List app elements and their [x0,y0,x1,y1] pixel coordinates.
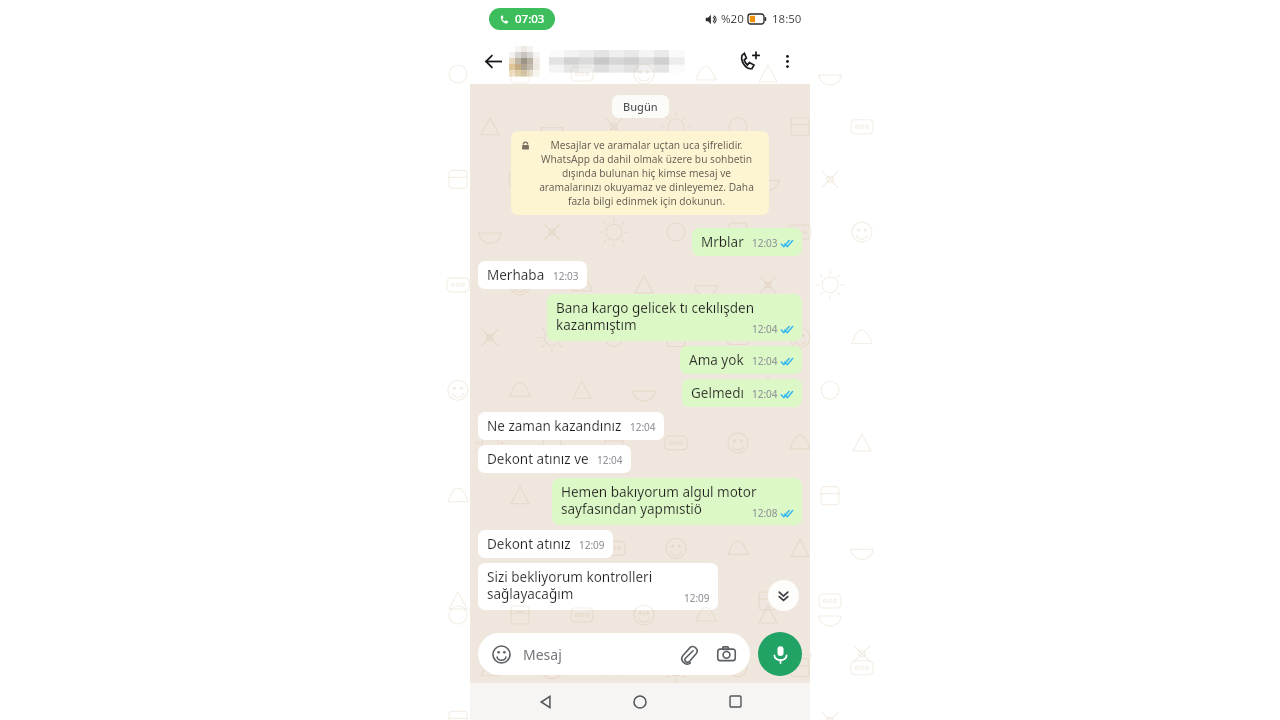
button[interactable]: Back [480,48,506,74]
button[interactable]: Emoji [490,643,512,665]
staticText: Hemen bakıyorum algul motor sayfasından … [561,483,794,518]
button[interactable]: Mesajlar ve aramalar uçtan uca şifrelidi… [511,131,769,215]
button[interactable]: Emoji [478,633,750,675]
button[interactable]: Bana kargo gelicek tı cekılışden kazanmı… [547,294,802,341]
staticText: Mesaj [523,645,562,664]
button[interactable]: Scroll to bottom [768,580,799,611]
staticText: %20 [721,11,744,27]
staticText: Dekont atınız ve [487,450,589,468]
button[interactable]: Recents [716,683,754,720]
staticText: 12:08 [752,506,778,520]
staticText: 12:04 [752,387,778,401]
button[interactable]: Bugün [612,95,669,118]
staticText: Dekont atınız [487,535,571,553]
staticText: Bugün [623,99,658,114]
button[interactable]: Ama yok [680,346,802,374]
button[interactable]: Mrblar [692,228,802,256]
staticText: Merhaba [487,266,545,284]
button[interactable]: Hemen bakıyorum algul motor sayfasından … [552,478,802,525]
button[interactable]: Back [527,683,565,720]
staticText: 12:03 [553,269,579,283]
staticText: 12:04 [597,453,623,467]
button[interactable]: More options [774,48,800,74]
staticText: Mrblar [701,233,744,251]
button[interactable] [509,46,684,76]
button[interactable]: Ne zaman kazandınız [478,412,664,440]
button[interactable]: Dekont atınız [478,530,613,558]
button[interactable]: 07:03 [489,8,555,30]
button[interactable]: Attach [676,642,700,666]
button[interactable]: Voice message [758,632,802,676]
staticText: Ne zaman kazandınız [487,417,622,435]
button[interactable]: Dekont atınız ve [478,445,631,473]
staticText: 07:03 [515,11,545,27]
button[interactable]: Camera [714,642,738,666]
staticText: Gelmedı [691,384,744,402]
staticText: Ama yok [689,351,744,369]
button[interactable]: Gelmedı [682,379,802,407]
button[interactable]: Home [621,683,659,720]
staticText: 12:09 [684,591,710,605]
button[interactable]: Add call [735,46,765,76]
staticText: 12:04 [752,322,778,336]
staticText: 12:09 [579,538,605,552]
staticText: 18:50 [772,11,802,27]
staticText: 12:04 [752,354,778,368]
staticText: 12:03 [752,236,778,250]
staticText: Sizi bekliyorum kontrolleri sağlayacağım [487,568,710,603]
staticText: 12:04 [630,420,656,434]
button[interactable]: Sizi bekliyorum kontrolleri sağlayacağım [478,563,718,610]
staticText: Mesajlar ve aramalar uçtan uca şifrelidi… [534,138,759,208]
button[interactable]: Merhaba [478,261,587,289]
staticText: Bana kargo gelicek tı cekılışden kazanmı… [556,299,794,334]
